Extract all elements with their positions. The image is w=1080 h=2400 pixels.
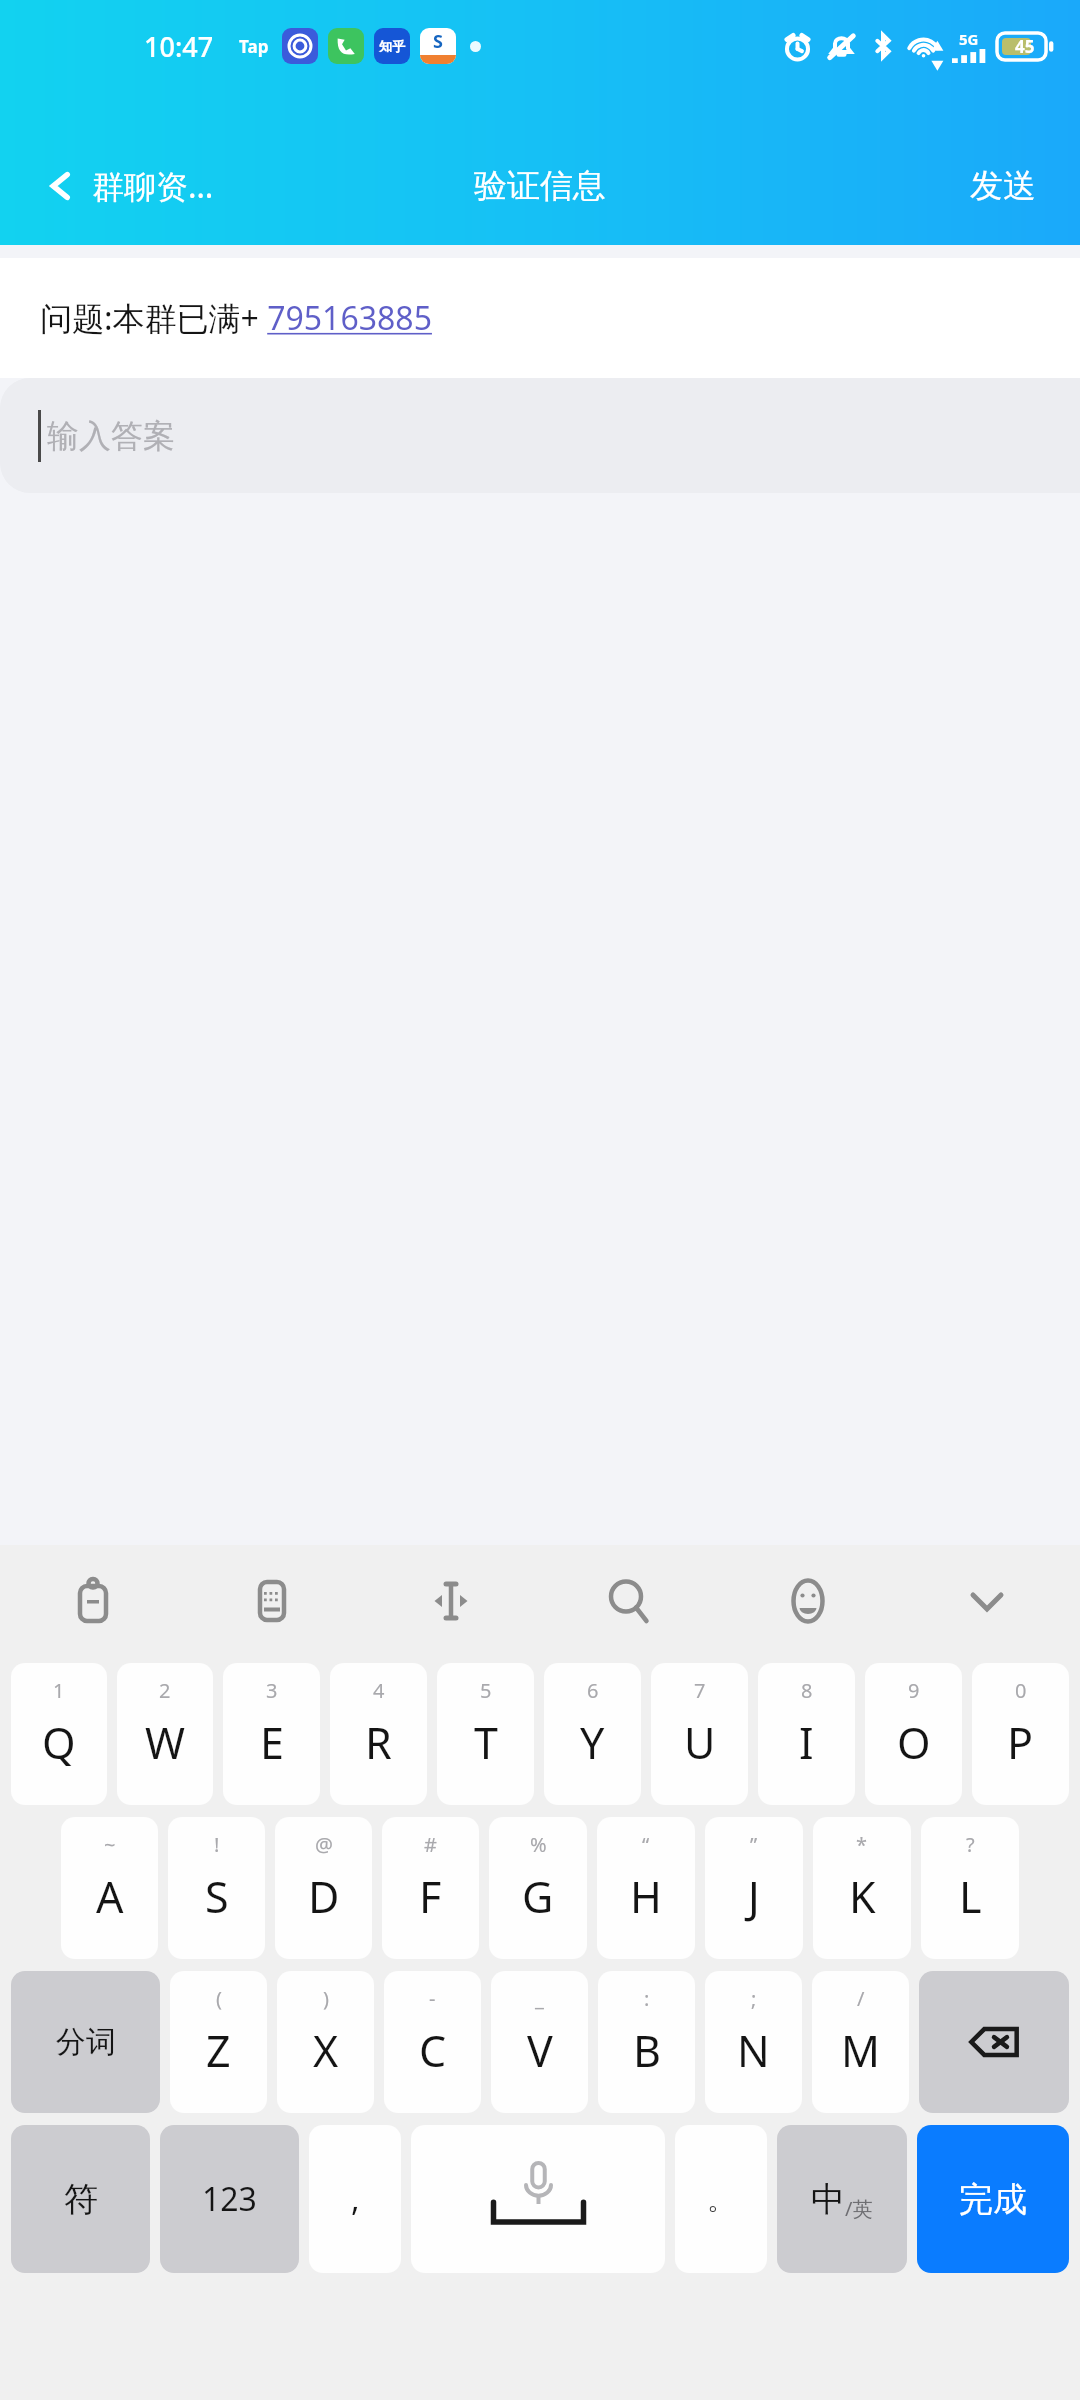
staticText: P [1007,1713,1034,1772]
button[interactable]: 符 [11,2125,150,2273]
staticText: 2 [159,1677,171,1704]
staticText: _ [535,1985,544,2012]
staticText: W [145,1713,185,1772]
staticText: / [857,1985,865,2012]
staticText: ( [216,1985,222,2012]
button[interactable]: 8 [758,1663,855,1805]
staticText: E [260,1713,284,1772]
staticText: O [897,1713,931,1772]
staticText: U [684,1713,716,1772]
staticText: 问题:本群已满+ 795163885 [40,296,432,340]
button[interactable]: ~ [61,1817,158,1959]
staticText: , [351,2177,360,2221]
button[interactable]: 完成 [917,2125,1069,2273]
staticText: 完成 [959,2178,1027,2221]
button[interactable]: - [384,1971,481,2113]
button[interactable]: Back [48,127,214,245]
staticText: 9 [908,1677,920,1704]
staticText: B [633,2021,661,2080]
staticText: “ [642,1831,650,1858]
button[interactable]: 4 [330,1663,427,1805]
staticText: /英 [845,2195,873,2222]
button[interactable]: 6 [544,1663,641,1805]
button[interactable]: # [382,1817,479,1959]
button[interactable]: 1 [11,1663,107,1805]
button[interactable]: 9 [865,1663,962,1805]
staticText: 123 [202,2177,257,2221]
staticText: H [630,1867,662,1926]
button[interactable]: ) [277,1971,374,2113]
other: Back [48,173,74,199]
staticText: 验证信息 [474,165,606,207]
staticText: ~ [104,1831,116,1858]
button[interactable]: Backspace [919,1971,1069,2113]
staticText: 。 [707,2182,735,2217]
button[interactable]: ; [705,1971,802,2113]
staticText: Q [42,1713,76,1772]
button[interactable]: : [598,1971,695,2113]
staticText: 1 [53,1677,65,1704]
button[interactable]: ( [170,1971,267,2113]
button[interactable]: / [812,1971,909,2113]
staticText: I [799,1713,814,1772]
button[interactable]: ? [921,1817,1019,1959]
staticText: - [429,1985,436,2012]
staticText: 6 [587,1677,599,1704]
staticText: 4 [373,1677,385,1704]
button[interactable]: 3 [223,1663,320,1805]
button[interactable]: 。 [675,2125,767,2273]
button[interactable]: 0 [972,1663,1069,1805]
staticText: : [644,1985,650,2012]
staticText: 中 [811,2178,845,2221]
button[interactable]: ! [168,1817,265,1959]
button[interactable]: 问题:本群已满+ 795163885 [0,258,1080,378]
button[interactable]: Search [584,1556,674,1646]
staticText: ; [751,1985,757,2012]
staticText: X [313,2021,339,2080]
button[interactable]: , [309,2125,401,2273]
button[interactable]: 7 [651,1663,748,1805]
button[interactable]: 123 [160,2125,299,2273]
staticText: ” [750,1831,758,1858]
staticText: 7 [694,1677,706,1704]
button[interactable]: Keyboard layout [227,1556,317,1646]
button[interactable]: 5 [437,1663,534,1805]
button[interactable]: Clipboard [48,1556,138,1646]
staticText: R [365,1713,392,1772]
button[interactable]: * [813,1817,911,1959]
button[interactable]: 中 [777,2125,907,2273]
button[interactable]: _ [491,1971,588,2113]
staticText: T [474,1713,498,1772]
staticText: 3 [266,1677,278,1704]
staticText: G [522,1867,554,1926]
staticText: C [419,2021,447,2080]
staticText: 8 [801,1677,813,1704]
staticText: S [205,1867,229,1926]
button[interactable]: 输入答案 [0,378,1080,493]
button[interactable]: 2 [117,1663,213,1805]
button[interactable]: @ [275,1817,372,1959]
button[interactable]: 发送 [970,127,1036,245]
staticText: J [748,1867,760,1926]
button[interactable]: Hide keyboard [942,1556,1032,1646]
staticText: @ [315,1831,333,1858]
staticText: D [308,1867,340,1926]
button[interactable]: Move cursor [406,1556,496,1646]
staticText: % [530,1831,547,1858]
staticText: 群聊资… [92,164,214,208]
staticText: S [433,29,443,54]
button[interactable]: 分词 [11,1971,160,2113]
button[interactable]: ” [705,1817,803,1959]
staticText: Tap [239,35,269,58]
staticText: Y [580,1713,605,1772]
button[interactable]: Space [411,2125,665,2273]
staticText: 发送 [970,165,1036,207]
staticText: L [959,1867,982,1926]
button[interactable]: “ [597,1817,695,1959]
button[interactable]: Emoji [763,1556,853,1646]
staticText: ! [214,1831,220,1858]
staticText: * [856,1831,868,1858]
button[interactable]: % [489,1817,587,1959]
staticText: 输入答案 [47,416,175,456]
staticText: 5 [480,1677,492,1704]
